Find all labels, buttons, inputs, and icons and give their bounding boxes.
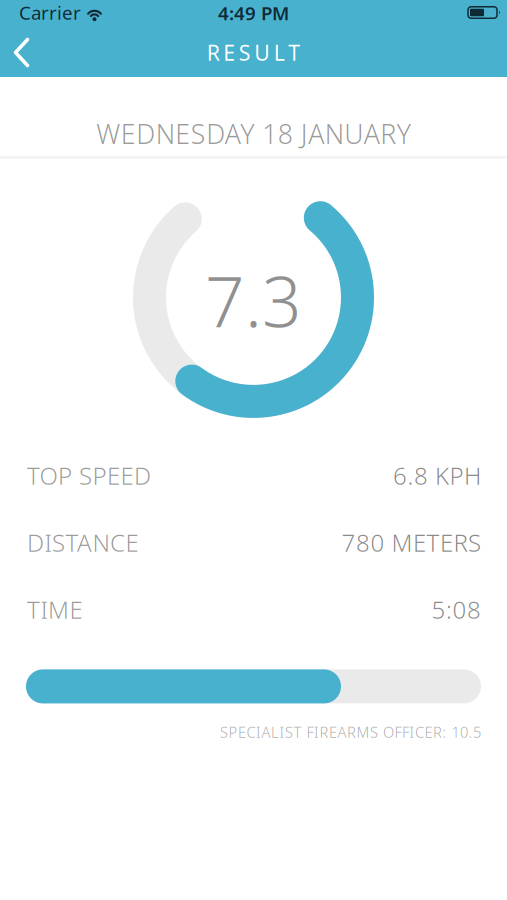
staticText: TOP SPEED	[27, 459, 151, 491]
staticText: 780 METERS	[341, 526, 481, 558]
staticText: 6.8 KPH	[393, 459, 481, 491]
staticText: Carrier	[19, 0, 81, 25]
staticText: WEDNESDAY 18 JANUARY	[96, 116, 411, 151]
staticText: 4:49 PM	[218, 1, 289, 25]
staticText: TIME	[27, 593, 82, 625]
staticText: 5:08	[431, 593, 481, 625]
staticText: 7.3	[205, 254, 302, 346]
staticText: DISTANCE	[27, 526, 138, 558]
staticText: SPECIALIST FIREARMS OFFICER: 10.5	[220, 722, 481, 742]
staticText: RESULT	[207, 38, 300, 67]
button[interactable]: Back	[0, 28, 44, 77]
